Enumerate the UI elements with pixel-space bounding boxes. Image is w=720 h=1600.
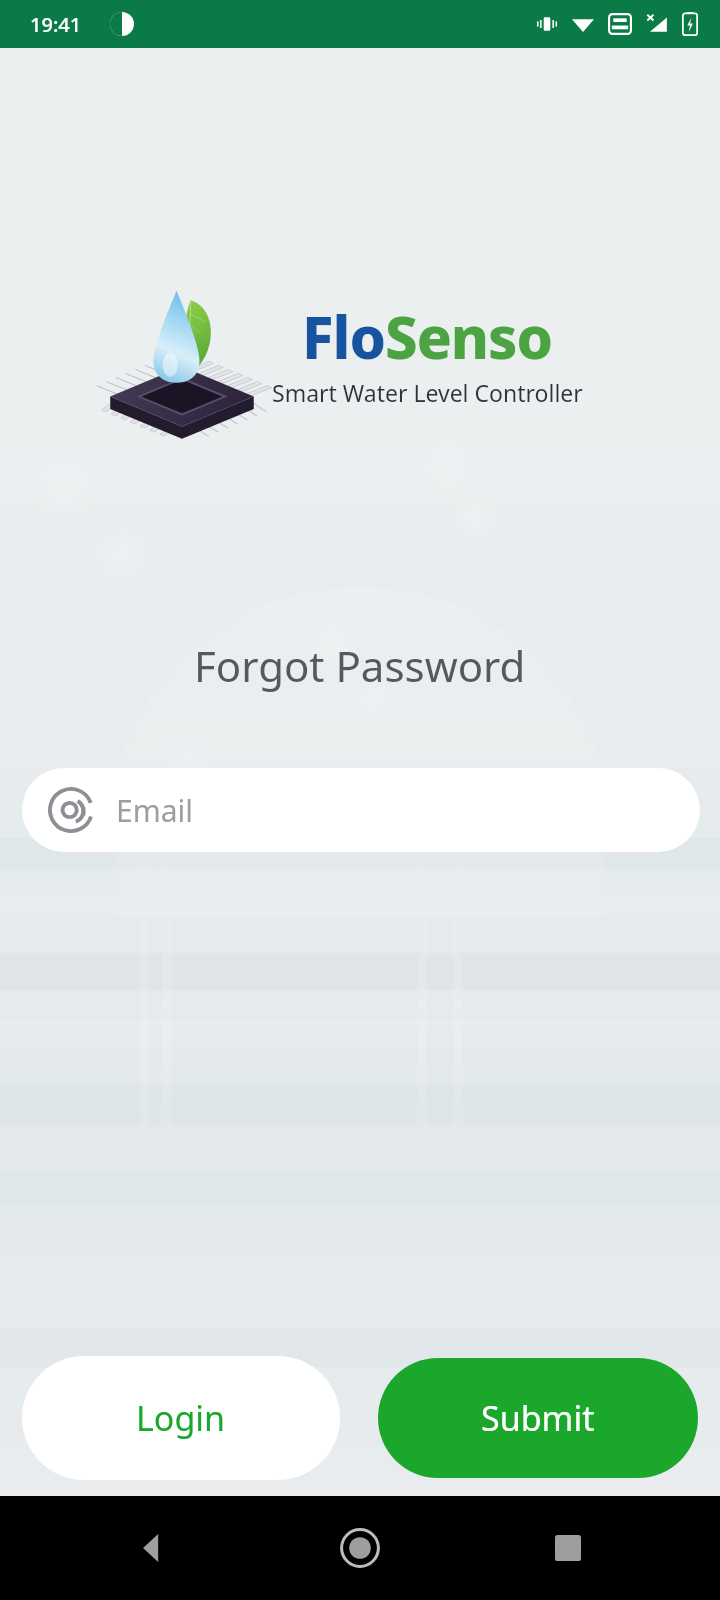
staticText: Smart Water Level Controller [272,377,583,408]
staticText: 19:41 [30,11,82,38]
staticText: Submit [481,1395,595,1441]
staticText: FloSenso [302,297,553,376]
staticText: Login [136,1395,226,1441]
button[interactable]: Home [328,1516,392,1580]
button[interactable]: Back [120,1516,184,1580]
other: Email [48,787,94,833]
staticText: Forgot Password [194,637,526,694]
button[interactable]: Submit [378,1358,698,1478]
button[interactable]: Login [22,1356,340,1480]
button[interactable]: Recent apps [536,1516,600,1580]
button[interactable]: Email [22,768,700,852]
staticText: Email [116,790,194,831]
